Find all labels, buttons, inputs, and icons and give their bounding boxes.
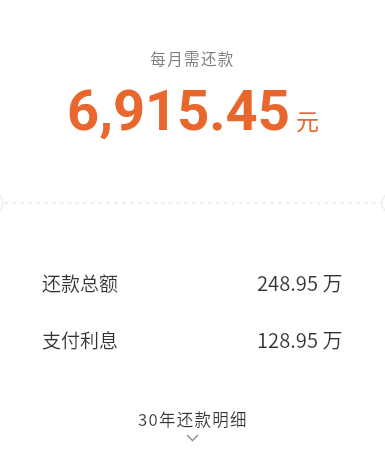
- button[interactable]: 30年还款明细: [0, 407, 385, 441]
- staticText: 支付利息: [42, 326, 119, 354]
- staticText: 128.95 万: [257, 325, 343, 354]
- other: Expand repayment schedule: [187, 435, 198, 441]
- staticText: 每月需还款: [0, 47, 385, 69]
- staticText: 248.95 万: [257, 268, 343, 297]
- staticText: 6,915.45: [67, 78, 290, 144]
- staticText: 还款总额: [42, 269, 119, 297]
- button[interactable]: 支付利息: [0, 325, 385, 354]
- button[interactable]: 还款总额: [0, 268, 385, 297]
- staticText: 30年还款明细: [138, 407, 248, 431]
- staticText: 元: [296, 103, 319, 136]
